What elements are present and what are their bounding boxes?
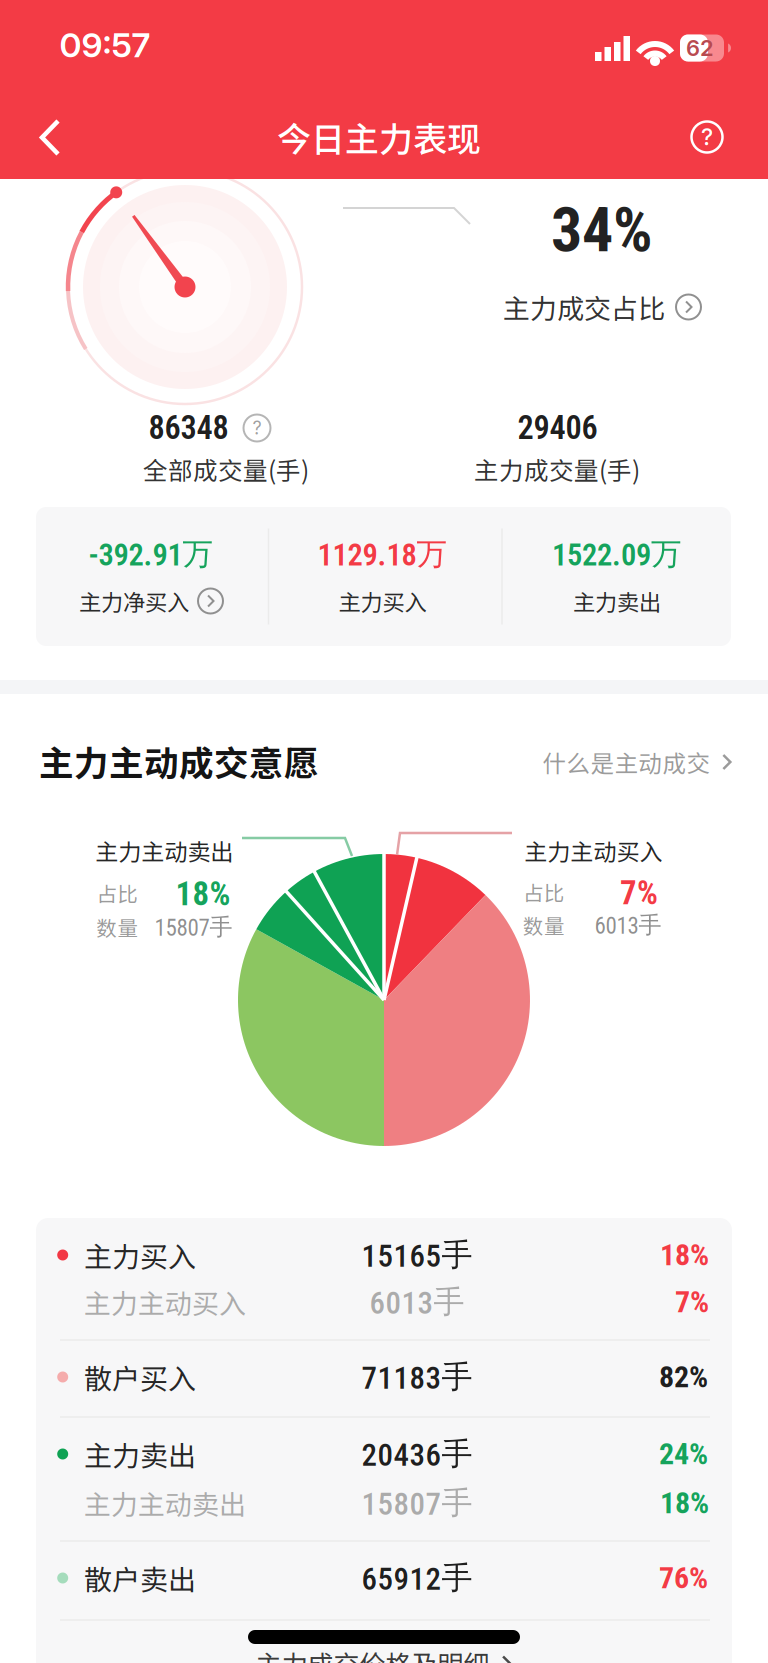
- staticText: 主力主动卖出: [95, 834, 233, 867]
- staticText: 主力卖出: [573, 585, 661, 617]
- staticText: 主力买入: [338, 585, 426, 617]
- staticText: 76%: [659, 1560, 708, 1596]
- staticText: 82%: [659, 1359, 708, 1395]
- staticText: 今日主力表现: [277, 112, 481, 162]
- staticText: 15807手: [154, 912, 232, 941]
- staticText: 65912手: [361, 1558, 472, 1598]
- staticText: 主力成交占比: [503, 287, 665, 327]
- button[interactable]: 主力成交价格及明细: [255, 1644, 512, 1663]
- button[interactable]: 主力成交占比: [503, 287, 701, 327]
- staticText: 占比: [96, 878, 138, 908]
- staticText: 15165手: [361, 1235, 472, 1275]
- staticText: 1129.18万: [317, 535, 447, 573]
- staticText: 数量: [96, 912, 138, 942]
- staticText: ?: [252, 417, 261, 439]
- staticText: 1522.09万: [552, 535, 682, 573]
- staticText: 主力净买入: [79, 585, 189, 617]
- staticText: 18%: [175, 875, 230, 913]
- staticText: 18%: [660, 1485, 709, 1521]
- staticText: 主力主动卖出: [84, 1483, 246, 1523]
- staticText: 主力主动买入: [524, 834, 662, 867]
- staticText: 散户卖出: [84, 1558, 196, 1598]
- button[interactable]: Help: [691, 121, 722, 152]
- staticText: 主力成交量(手): [474, 451, 640, 487]
- staticText: 62: [686, 35, 714, 61]
- staticText: 主力卖出: [84, 1434, 196, 1474]
- staticText: 86348: [148, 409, 228, 447]
- staticText: ?: [701, 123, 713, 151]
- staticText: 主力主动成交意愿: [39, 736, 319, 786]
- staticText: 15807手: [361, 1483, 472, 1523]
- staticText: 29406: [517, 409, 597, 447]
- staticText: 占比: [523, 877, 565, 907]
- staticText: -392.91万: [88, 535, 213, 573]
- staticText: 34%: [551, 194, 653, 266]
- staticText: 主力成交价格及明细: [255, 1644, 489, 1663]
- staticText: 什么是主动成交: [542, 745, 710, 779]
- button[interactable]: Back: [0, 0, 768, 1663]
- staticText: 71183手: [361, 1357, 472, 1397]
- staticText: 主力主动买入: [84, 1282, 246, 1322]
- staticText: 20436手: [361, 1434, 472, 1474]
- staticText: 09:57: [59, 24, 150, 65]
- staticText: 7%: [620, 874, 658, 912]
- staticText: 18%: [660, 1237, 709, 1273]
- staticText: 全部成交量(手): [143, 451, 309, 487]
- staticText: 7%: [675, 1284, 709, 1320]
- button[interactable]: 什么是主动成交: [542, 745, 733, 779]
- staticText: 散户买入: [84, 1357, 196, 1397]
- staticText: 主力买入: [84, 1235, 196, 1275]
- button[interactable]: 主力净买入: [79, 585, 223, 617]
- staticText: 24%: [659, 1436, 708, 1472]
- staticText: 6013手: [369, 1282, 464, 1322]
- staticText: 数量: [523, 910, 565, 940]
- staticText: 6013手: [594, 910, 661, 939]
